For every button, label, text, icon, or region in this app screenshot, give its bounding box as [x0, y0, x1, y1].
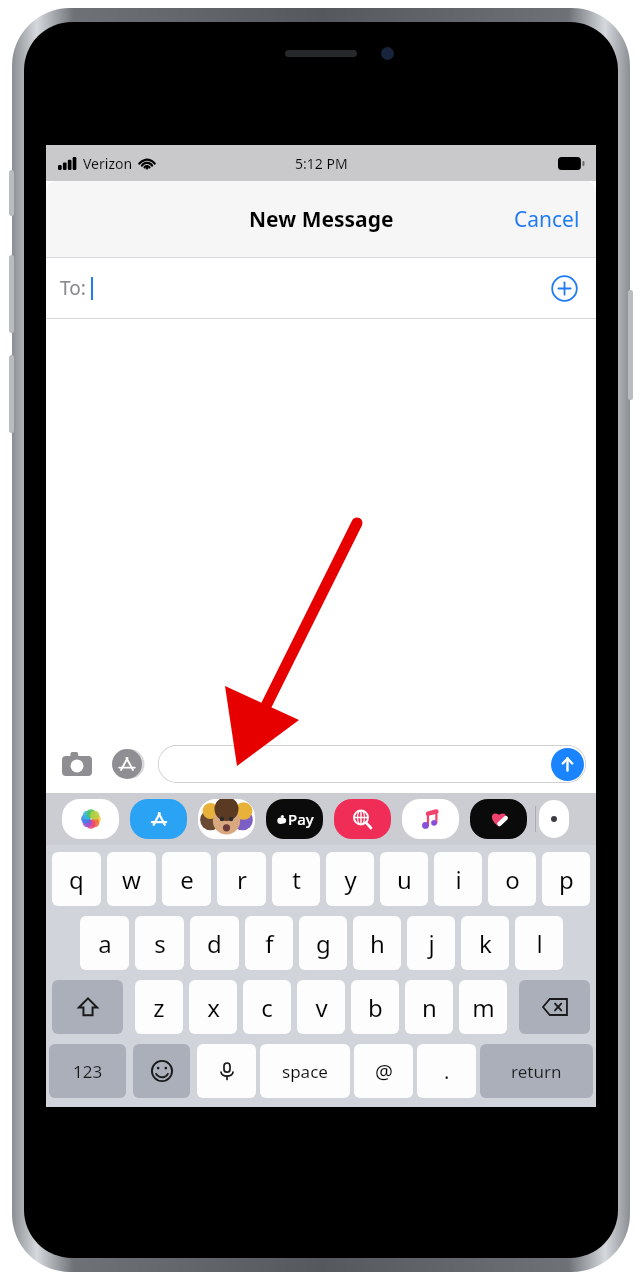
button[interactable]: b	[351, 980, 399, 1034]
staticText: 123	[73, 1060, 103, 1083]
staticText: m	[472, 991, 495, 1024]
button[interactable]: s	[135, 916, 184, 970]
staticText: space	[282, 1060, 328, 1083]
staticText: Verizon	[83, 154, 133, 173]
button[interactable]: n	[405, 980, 453, 1034]
staticText: e	[180, 863, 194, 896]
button[interactable]: Shift	[52, 980, 123, 1034]
button[interactable]: g	[299, 916, 347, 970]
staticText: Pay	[288, 809, 314, 829]
button[interactable]: i	[434, 852, 482, 906]
button[interactable]: App	[195, 798, 257, 840]
button[interactable]: App	[399, 798, 461, 840]
staticText: New Message	[249, 205, 394, 234]
button[interactable]: Emoji	[133, 1044, 190, 1098]
staticText: To:	[60, 275, 86, 301]
staticText: j	[428, 927, 435, 960]
button[interactable]: App	[127, 798, 189, 840]
staticText: y	[344, 863, 357, 896]
staticText: k	[479, 927, 492, 960]
staticText: .	[444, 1058, 450, 1085]
button[interactable]: l	[515, 916, 563, 970]
button[interactable]: x	[189, 980, 237, 1034]
button[interactable]: @	[354, 1044, 413, 1098]
staticText: i	[455, 863, 462, 896]
staticText: s	[154, 927, 166, 960]
staticText: 5:12 PM	[295, 154, 348, 173]
button[interactable]: j	[407, 916, 455, 970]
button[interactable]: More apps	[539, 798, 569, 840]
button[interactable]: v	[297, 980, 345, 1034]
staticText: Cancel	[514, 205, 580, 234]
button[interactable]: m	[459, 980, 507, 1034]
button[interactable]: a	[80, 916, 129, 970]
staticText: x	[207, 991, 220, 1024]
staticText: p	[559, 863, 574, 896]
staticText: l	[536, 927, 543, 960]
button[interactable]: App	[467, 798, 529, 840]
button[interactable]: c	[243, 980, 291, 1034]
staticText: q	[69, 863, 84, 896]
staticText: z	[153, 991, 165, 1024]
button[interactable]: y	[326, 852, 374, 906]
staticText: d	[207, 927, 222, 960]
button[interactable]: App	[263, 798, 325, 840]
button[interactable]: return	[480, 1044, 593, 1098]
button[interactable]: space	[260, 1044, 350, 1098]
button[interactable]: .	[417, 1044, 476, 1098]
staticText: return	[511, 1060, 562, 1083]
button[interactable]: App Store	[106, 743, 148, 785]
staticText: v	[315, 991, 328, 1024]
button[interactable]: o	[488, 852, 536, 906]
staticText: h	[370, 927, 385, 960]
staticText: a	[98, 927, 112, 960]
button[interactable]: f	[245, 916, 293, 970]
button[interactable]: u	[380, 852, 428, 906]
button[interactable]: d	[190, 916, 239, 970]
staticText: g	[316, 927, 331, 960]
button[interactable]: 123	[49, 1044, 126, 1098]
staticText: o	[505, 863, 520, 896]
staticText: t	[292, 863, 301, 896]
button[interactable]: Backspace	[519, 980, 590, 1034]
staticText: r	[237, 863, 247, 896]
button[interactable]: App	[331, 798, 393, 840]
button[interactable]: Add contact	[544, 268, 584, 308]
button[interactable]: k	[461, 916, 509, 970]
button[interactable]: App	[59, 798, 121, 840]
button[interactable]: Camera	[56, 743, 98, 785]
button[interactable]: Send	[158, 745, 586, 783]
staticText: b	[368, 991, 383, 1024]
staticText: n	[422, 991, 437, 1024]
button[interactable]: w	[107, 852, 156, 906]
button[interactable]: Send	[551, 748, 584, 781]
staticText: @	[375, 1058, 393, 1085]
staticText: w	[122, 863, 141, 896]
button[interactable]: h	[353, 916, 401, 970]
staticText: u	[397, 863, 412, 896]
staticText: c	[261, 991, 273, 1024]
button[interactable]: Dictation	[197, 1044, 256, 1098]
staticText: f	[265, 927, 274, 960]
button[interactable]: p	[542, 852, 590, 906]
button[interactable]: r	[217, 852, 266, 906]
button[interactable]: z	[135, 980, 183, 1034]
button[interactable]: t	[272, 852, 320, 906]
button[interactable]: e	[162, 852, 211, 906]
button[interactable]: Cancel	[498, 195, 596, 244]
button[interactable]: q	[52, 852, 101, 906]
